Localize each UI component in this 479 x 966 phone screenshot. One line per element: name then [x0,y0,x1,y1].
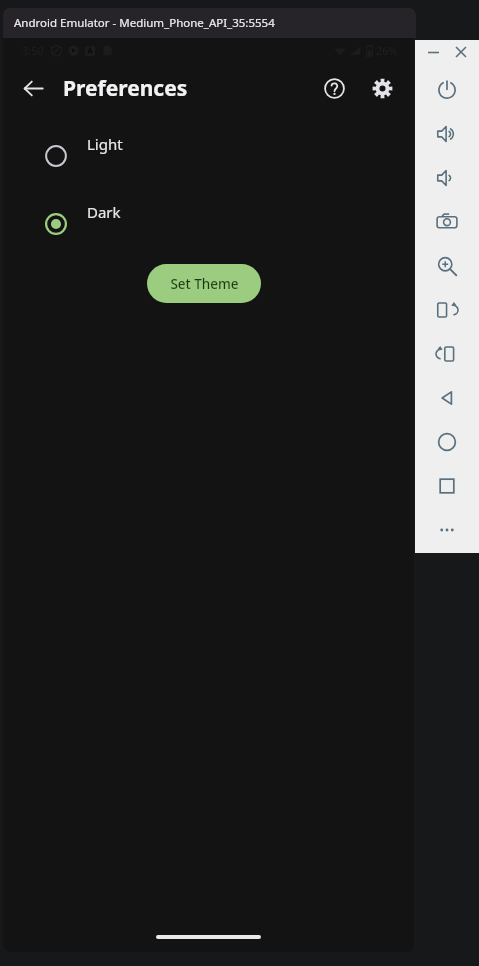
button[interactable]: Set Theme [147,264,261,303]
button[interactable]: Help [313,67,355,109]
button[interactable]: More [425,508,469,552]
button[interactable]: Back [11,66,55,110]
staticText: Set Theme [170,275,239,293]
button[interactable]: Close [451,42,471,62]
staticText: 3:50 [22,43,44,58]
staticText: Android Emulator - Medium_Phone_API_35:5… [14,15,275,31]
button[interactable]: Settings [361,67,403,109]
staticText: Preferences [63,74,188,103]
button[interactable]: Volume up [425,112,469,156]
button[interactable]: Power [425,68,469,112]
button[interactable]: Rotate right [425,332,469,376]
button[interactable]: Overview [425,464,469,508]
button[interactable]: Dark [3,204,414,244]
button[interactable]: Rotate left [425,288,469,332]
staticText: Light [87,134,123,154]
button[interactable]: Home [425,420,469,464]
button[interactable]: Minimize [423,42,443,62]
button[interactable]: Light [3,136,414,176]
button[interactable]: Back [425,376,469,420]
button[interactable]: Screenshot [425,200,469,244]
staticText: 26% [376,43,398,58]
staticText: Dark [87,202,121,222]
button[interactable]: Zoom [425,244,469,288]
button[interactable]: Volume down [425,156,469,200]
